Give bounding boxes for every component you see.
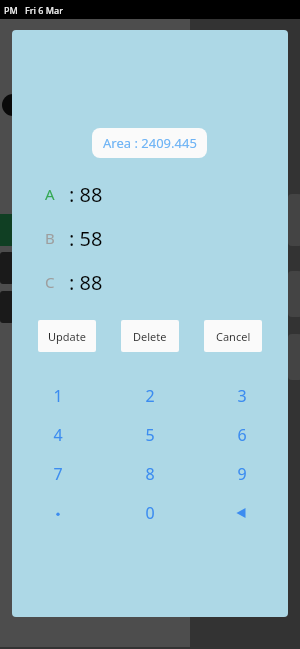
staticText: 1 — [53, 385, 63, 407]
button[interactable]: 2 — [104, 376, 196, 415]
button[interactable]: 7 — [12, 454, 104, 493]
staticText: Update — [48, 329, 86, 344]
staticText: B — [45, 228, 55, 248]
staticText: Area : 2409.445 — [103, 134, 197, 152]
button[interactable]: 6 — [196, 415, 288, 454]
button[interactable]: C — [12, 266, 288, 298]
staticText: C — [45, 272, 55, 292]
staticText: 2 — [145, 385, 155, 407]
staticText: Delete — [133, 329, 167, 344]
button[interactable]: Backspace — [196, 493, 288, 532]
staticText: 9 — [237, 463, 247, 485]
staticText: 6 — [237, 424, 247, 446]
button[interactable]: Cancel — [204, 320, 262, 352]
button[interactable] — [12, 493, 104, 532]
button[interactable]: Delete — [121, 320, 179, 352]
button[interactable]: 8 — [104, 454, 196, 493]
staticText: : 88 — [69, 269, 103, 296]
staticText: 3 — [237, 385, 247, 407]
staticText: 7 — [53, 463, 63, 485]
button[interactable]: 4 — [12, 415, 104, 454]
staticText: A — [45, 184, 55, 204]
staticText: Fri 6 Mar — [25, 4, 64, 16]
button[interactable]: B — [12, 222, 288, 254]
staticText: 5 — [145, 424, 155, 446]
button[interactable]: Area : 2409.445 — [92, 128, 207, 158]
staticText: : 88 — [69, 181, 103, 208]
button[interactable]: A — [12, 178, 288, 210]
staticText: : 58 — [69, 225, 103, 252]
button[interactable]: 1 — [12, 376, 104, 415]
staticText: Cancel — [216, 329, 251, 344]
staticText: 0 — [145, 502, 155, 524]
staticText: 8 — [145, 463, 155, 485]
staticText: PM — [4, 4, 18, 16]
button[interactable]: 9 — [196, 454, 288, 493]
button[interactable]: 5 — [104, 415, 196, 454]
staticText: 4 — [53, 424, 63, 446]
button[interactable]: 0 — [104, 493, 196, 532]
button[interactable]: 3 — [196, 376, 288, 415]
button[interactable]: Update — [38, 320, 96, 352]
